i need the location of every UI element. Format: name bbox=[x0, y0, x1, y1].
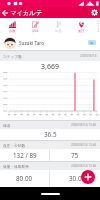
staticText: 2020/06/14 bbox=[80, 54, 97, 58]
staticText: 記録 bbox=[32, 29, 39, 33]
staticText: 75 bbox=[71, 151, 79, 160]
staticText: 30.0 bbox=[69, 174, 82, 183]
button[interactable]: 36.5 bbox=[0, 129, 100, 140]
staticText: ステップ数 bbox=[3, 54, 22, 59]
staticText: 血圧・心拍数 bbox=[3, 143, 26, 148]
button[interactable]: 132 / 89 bbox=[0, 149, 100, 161]
staticText: 歩数 bbox=[9, 29, 16, 33]
button[interactable]: 男 bbox=[88, 40, 96, 45]
button[interactable]: Settings bbox=[89, 7, 100, 18]
staticText: 132 / 89 bbox=[13, 151, 37, 160]
staticText: 80.00 bbox=[16, 174, 33, 183]
staticText: 3,669 bbox=[41, 62, 59, 72]
button[interactable]: Suzuki Taro bbox=[0, 35, 100, 50]
staticText: 男 bbox=[90, 41, 94, 45]
staticText: 2020/06/14 13:46 bbox=[71, 123, 97, 127]
staticText: 2020/06/14 13:46 bbox=[71, 164, 97, 168]
staticText: 2020/06/14 13:46 bbox=[71, 143, 97, 147]
staticText: Suzuki Taro bbox=[19, 40, 44, 46]
staticText: 体重・体脂肪率 bbox=[3, 164, 29, 169]
button[interactable]: Add record bbox=[81, 170, 95, 184]
button[interactable]: 血圧 bbox=[70, 18, 93, 35]
staticText: 血圧 bbox=[78, 29, 85, 33]
staticText: 36.5 bbox=[44, 130, 57, 139]
staticText: 体温 bbox=[55, 29, 62, 33]
button[interactable]: 歩数 bbox=[0, 18, 24, 35]
button[interactable]: 記録 bbox=[24, 18, 47, 35]
button[interactable]: Back bbox=[0, 7, 10, 18]
button[interactable]: 80.00 bbox=[0, 170, 100, 187]
button[interactable]: 体温 bbox=[47, 18, 70, 35]
staticText: マイカルテ bbox=[10, 9, 43, 17]
staticText: 体温 bbox=[3, 123, 11, 128]
